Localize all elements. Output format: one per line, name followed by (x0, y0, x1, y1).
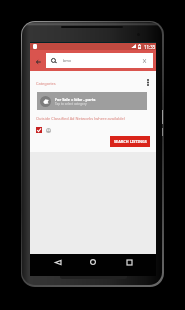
button[interactable]: For Sale » bike - parts (37, 92, 147, 110)
button[interactable]: SEARCH LISTINGS (110, 136, 150, 147)
button[interactable]: More options (142, 76, 154, 88)
button[interactable]: Information (42, 124, 54, 136)
button[interactable]: Recent apps (123, 256, 135, 268)
staticText: Outside Classified Ad Networks (where av… (36, 116, 125, 121)
staticText: Categories (36, 81, 56, 86)
button[interactable]: Home (87, 256, 99, 268)
staticText: SEARCH LISTINGS (114, 139, 147, 144)
button[interactable]: Back (52, 256, 64, 268)
staticText: Tap to select category (55, 102, 87, 106)
staticText: bmx (63, 58, 71, 63)
button[interactable]: Clear query (139, 55, 150, 66)
staticText: For Sale » bike - parts (55, 97, 96, 102)
button[interactable]: Navigate up (31, 55, 45, 69)
staticText: 11:35 (144, 44, 156, 50)
button[interactable] (33, 124, 45, 136)
button[interactable]: bmx (46, 53, 153, 68)
